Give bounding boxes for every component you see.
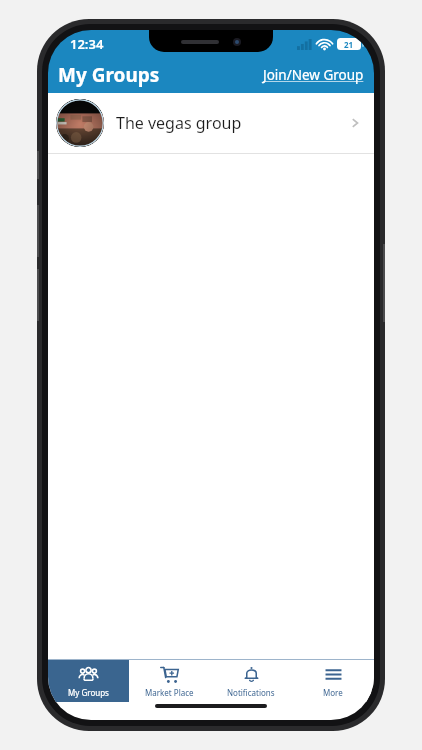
button[interactable]: Market Place [129, 660, 210, 702]
staticText: Join/New Group [263, 66, 364, 84]
staticText: My Groups [58, 62, 160, 88]
button[interactable]: Notifications [210, 660, 292, 702]
staticText: My Groups [68, 687, 109, 698]
staticText: Notifications [227, 687, 275, 698]
staticText: 12:34 [70, 35, 104, 53]
button[interactable]: The vegas group [48, 93, 374, 153]
staticText: More [323, 687, 343, 698]
staticText: 21 [344, 39, 354, 50]
button[interactable]: Join/New Group [253, 60, 374, 90]
staticText: The vegas group [116, 112, 348, 134]
staticText: Market Place [145, 687, 194, 698]
button[interactable]: More [292, 660, 374, 702]
button[interactable]: My Groups [48, 660, 129, 702]
